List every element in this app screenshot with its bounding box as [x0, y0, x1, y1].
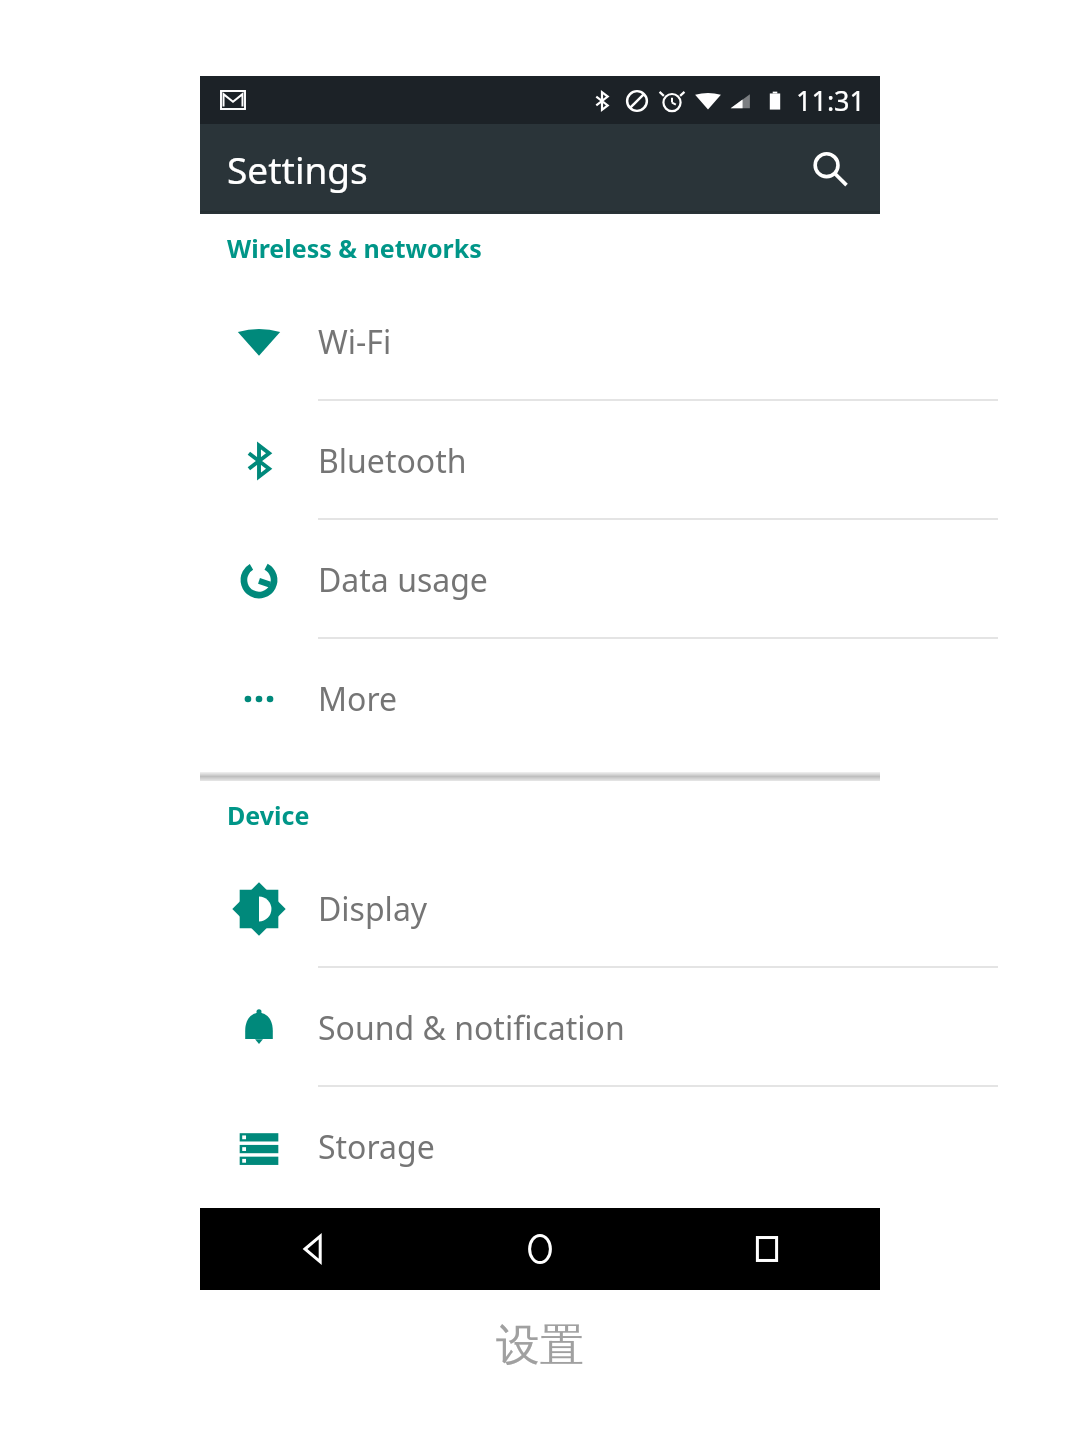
staticText: Display [318, 887, 428, 931]
staticText: Bluetooth [318, 439, 467, 483]
button[interactable]: Recents [653, 1208, 880, 1290]
button[interactable]: Home [426, 1208, 653, 1290]
staticText: Data usage [318, 558, 488, 602]
button[interactable]: Display [200, 849, 880, 968]
staticText: Wireless & networks [227, 231, 482, 265]
staticText: Wi-Fi [318, 320, 392, 364]
button[interactable]: Data usage [200, 520, 880, 639]
button[interactable]: Back [200, 1208, 426, 1290]
button[interactable]: Search [794, 133, 866, 205]
staticText: Storage [318, 1125, 435, 1169]
staticText: More [318, 677, 398, 721]
staticText: 11:31 [796, 82, 866, 119]
staticText: Device [227, 798, 310, 832]
staticText: 设置 [496, 1318, 584, 1373]
button[interactable]: Sound & notification [200, 968, 880, 1087]
button[interactable]: More [200, 639, 880, 758]
button[interactable]: Wi-Fi [200, 282, 880, 401]
button[interactable]: Storage [200, 1087, 880, 1206]
button[interactable]: Bluetooth [200, 401, 880, 520]
staticText: Settings [227, 144, 368, 194]
staticText: Sound & notification [318, 1006, 625, 1050]
